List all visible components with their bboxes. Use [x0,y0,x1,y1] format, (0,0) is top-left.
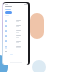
button[interactable] [3,34,28,39]
button[interactable] [3,29,28,34]
button[interactable] [3,39,28,44]
button[interactable] [3,18,28,23]
button[interactable] [3,24,28,29]
button[interactable] [5,11,12,14]
button[interactable] [3,44,28,49]
